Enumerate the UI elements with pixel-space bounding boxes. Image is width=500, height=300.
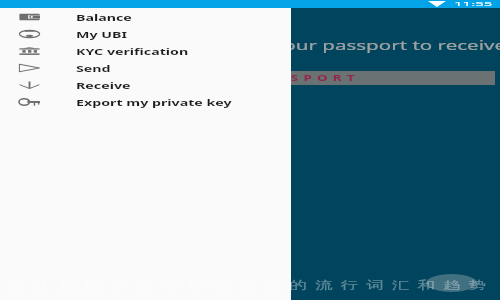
staticText: Send [76,62,111,74]
staticText: SCAN PASSPORT [185,72,360,84]
staticText: Receive [76,79,131,91]
button[interactable]: Receive [0,76,291,93]
staticText: 11:55 [454,0,494,8]
staticText: Balance [76,11,133,23]
button[interactable]: Balance [0,8,291,25]
staticText: KYC verification [76,45,190,57]
button[interactable]: Export my private key [0,93,291,110]
button[interactable]: My UBI [0,25,291,42]
button[interactable]: SCAN PASSPORT [4,71,495,85]
other: Download [428,1,446,7]
staticText: My UBI [76,28,128,40]
button[interactable]: Send [0,59,291,76]
staticText: Export my private key [76,96,232,108]
button[interactable]: KYC verification [0,42,291,59]
staticText: Please scan your passport to receive UBI [156,36,500,54]
staticText: 区块链数字货币行业最新的流行词汇和趋势 [8,278,495,292]
